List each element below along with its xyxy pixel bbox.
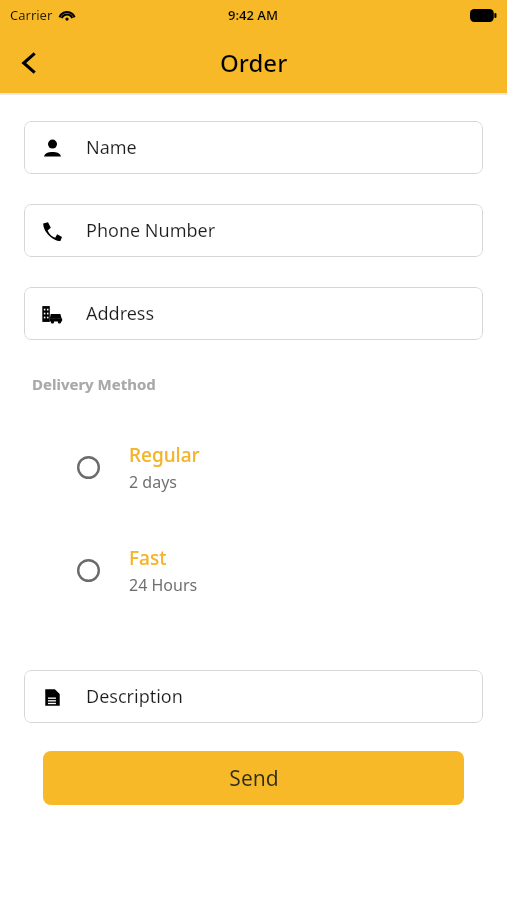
- button[interactable]: Address: [24, 287, 483, 340]
- staticText: 24 Hours: [129, 574, 198, 596]
- staticText: Regular: [129, 442, 200, 468]
- button[interactable]: Fast: [24, 541, 483, 600]
- staticText: Order: [220, 46, 288, 79]
- staticText: 2 days: [129, 471, 177, 493]
- button[interactable]: Regular: [24, 438, 483, 497]
- staticText: Phone Number: [86, 218, 216, 243]
- staticText: Fast: [129, 545, 167, 571]
- staticText: Send: [229, 764, 279, 793]
- staticText: 9:42 AM: [228, 6, 279, 24]
- button[interactable]: Description: [24, 670, 483, 723]
- button[interactable]: Back: [8, 41, 52, 85]
- button[interactable]: Name: [24, 121, 483, 174]
- staticText: Delivery Method: [32, 374, 156, 394]
- staticText: Address: [86, 301, 155, 326]
- button[interactable]: Send: [43, 751, 464, 805]
- staticText: Carrier: [10, 6, 53, 24]
- staticText: Name: [86, 135, 137, 160]
- staticText: Description: [86, 684, 183, 709]
- button[interactable]: Phone Number: [24, 204, 483, 257]
